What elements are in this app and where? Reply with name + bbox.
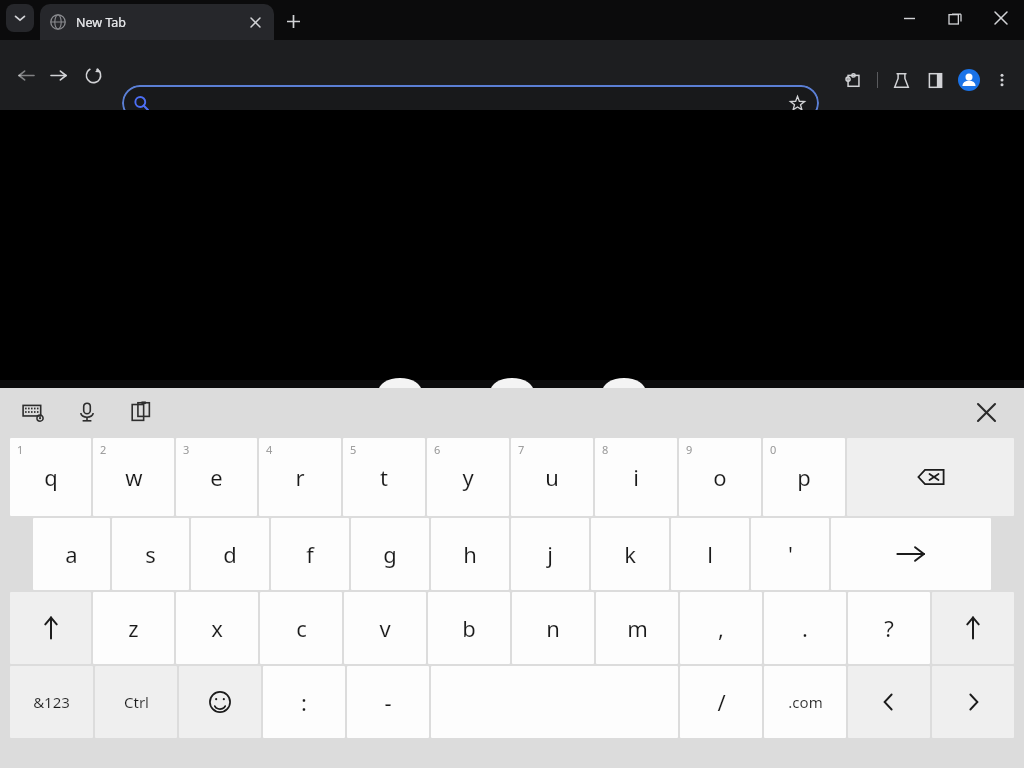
staticText: y: [462, 462, 474, 492]
staticText: 5: [350, 442, 357, 457]
button[interactable]: Close window: [978, 2, 1024, 34]
button[interactable]: [847, 438, 1014, 516]
button[interactable]: Extensions: [836, 63, 870, 97]
staticText: 2: [100, 442, 107, 457]
button[interactable]: Search tabs: [6, 4, 34, 32]
button[interactable]: n: [512, 592, 594, 664]
button[interactable]: s: [112, 518, 189, 590]
button[interactable]: Experiments: [884, 63, 918, 97]
button[interactable]: 4: [259, 438, 341, 516]
staticText: &123: [33, 692, 70, 712]
button[interactable]: Reload: [76, 58, 110, 92]
button[interactable]: x: [176, 592, 258, 664]
staticText: 6: [434, 442, 441, 457]
button[interactable]: :: [263, 666, 345, 738]
staticText: c: [296, 613, 307, 643]
button[interactable]: 1: [10, 438, 91, 516]
staticText: d: [223, 539, 237, 569]
button[interactable]: Profile: [952, 63, 986, 97]
button[interactable]: 7: [511, 438, 593, 516]
button[interactable]: g: [351, 518, 429, 590]
button[interactable]: .com: [764, 666, 846, 738]
button[interactable]: 2: [93, 438, 174, 516]
staticText: w: [125, 462, 143, 492]
button[interactable]: Clipboard: [126, 397, 156, 427]
button[interactable]: a: [33, 518, 110, 590]
staticText: l: [707, 539, 713, 569]
button[interactable]: [848, 666, 930, 738]
button[interactable]: Ctrl: [95, 666, 177, 738]
button[interactable]: Voice input: [72, 397, 102, 427]
button[interactable]: f: [271, 518, 349, 590]
button[interactable]: l: [671, 518, 749, 590]
button[interactable]: z: [93, 592, 174, 664]
staticText: 0: [770, 442, 777, 457]
button[interactable]: Back: [8, 58, 42, 92]
staticText: New Tab: [76, 14, 127, 31]
button[interactable]: 3: [176, 438, 257, 516]
button[interactable]: &123: [10, 666, 93, 738]
button[interactable]: [179, 666, 261, 738]
staticText: :: [301, 687, 307, 717]
staticText: z: [128, 613, 139, 643]
staticText: m: [627, 613, 648, 643]
staticText: e: [210, 462, 223, 492]
button[interactable]: v: [344, 592, 426, 664]
button[interactable]: Bookmark: [122, 85, 819, 121]
button[interactable]: 6: [427, 438, 509, 516]
staticText: a: [65, 539, 78, 569]
button[interactable]: -: [347, 666, 429, 738]
button[interactable]: 0: [763, 438, 845, 516]
button[interactable]: Forward: [42, 58, 76, 92]
staticText: o: [713, 462, 727, 492]
button[interactable]: 9: [679, 438, 761, 516]
button[interactable]: [932, 666, 1014, 738]
staticText: -: [384, 687, 392, 717]
button[interactable]: Chrome menu: [986, 64, 1018, 96]
staticText: /: [717, 687, 726, 717]
button[interactable]: m: [596, 592, 678, 664]
button[interactable]: /: [680, 666, 762, 738]
button[interactable]: Close keyboard: [970, 396, 1002, 428]
button[interactable]: ?: [848, 592, 930, 664]
button[interactable]: k: [591, 518, 669, 590]
staticText: 3: [183, 442, 190, 457]
staticText: x: [211, 613, 223, 643]
button[interactable]: Bookmark: [787, 93, 807, 113]
staticText: .: [802, 613, 808, 643]
button[interactable]: [932, 592, 1014, 664]
button[interactable]: b: [428, 592, 510, 664]
button[interactable]: h: [431, 518, 509, 590]
staticText: p: [797, 462, 811, 492]
staticText: 9: [686, 442, 693, 457]
button[interactable]: Minimize: [886, 2, 932, 34]
staticText: i: [633, 462, 639, 492]
staticText: h: [463, 539, 477, 569]
staticText: ?: [884, 613, 894, 643]
button[interactable]: New Tab: [40, 4, 274, 40]
staticText: 8: [602, 442, 609, 457]
staticText: u: [545, 462, 559, 492]
button[interactable]: [831, 518, 991, 590]
button[interactable]: Restore: [932, 2, 978, 34]
button[interactable]: 5: [343, 438, 425, 516]
staticText: n: [546, 613, 560, 643]
button[interactable]: ': [751, 518, 829, 590]
staticText: 7: [518, 442, 525, 457]
staticText: 4: [266, 442, 273, 457]
button[interactable]: j: [511, 518, 589, 590]
button[interactable]: ,: [680, 592, 762, 664]
button[interactable]: New tab: [280, 8, 306, 34]
button[interactable]: 8: [595, 438, 677, 516]
button[interactable]: Close tab: [243, 10, 267, 34]
button[interactable]: c: [260, 592, 342, 664]
button[interactable]: [10, 592, 91, 664]
staticText: f: [306, 539, 314, 569]
button[interactable]: d: [191, 518, 269, 590]
staticText: .com: [788, 692, 823, 712]
button[interactable]: .: [764, 592, 846, 664]
button[interactable]: Keyboard settings: [18, 397, 48, 427]
staticText: g: [383, 539, 397, 569]
button[interactable]: Side panel: [918, 63, 952, 97]
